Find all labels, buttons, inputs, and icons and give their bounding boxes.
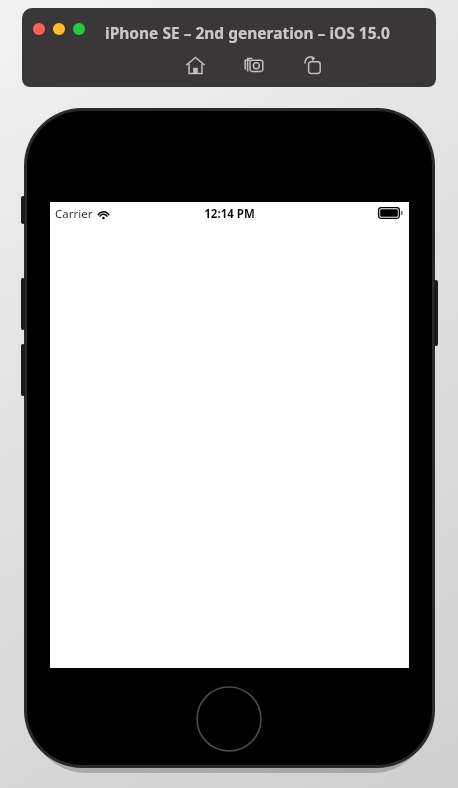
button[interactable]: Home button <box>196 686 262 752</box>
button[interactable]: Maximize window <box>73 23 85 35</box>
button[interactable]: Close window <box>33 23 45 35</box>
button[interactable]: Home <box>180 52 210 78</box>
button[interactable]: Minimize window <box>53 23 65 35</box>
staticText: Carrier <box>55 206 93 222</box>
staticText: iPhone SE – 2nd generation – iOS 15.0 <box>105 22 390 43</box>
staticText: 12:14 PM <box>204 206 255 222</box>
button[interactable]: Screenshot <box>239 52 269 78</box>
button[interactable]: Rotate <box>298 52 328 78</box>
